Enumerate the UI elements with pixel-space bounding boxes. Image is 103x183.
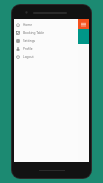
- button[interactable]: Home: [14, 21, 78, 29]
- button[interactable]: Open navigation drawer: [80, 21, 86, 27]
- button[interactable]: Booking Table: [14, 29, 78, 37]
- button[interactable]: Settings: [14, 37, 78, 45]
- staticText: Profile: [23, 47, 33, 51]
- button[interactable]: Logout: [14, 53, 78, 61]
- staticText: Home: [23, 23, 33, 27]
- staticText: Booking Table: [23, 31, 45, 35]
- staticText: Settings: [23, 39, 36, 43]
- staticText: Logout: [23, 55, 34, 59]
- button[interactable]: Profile: [14, 45, 78, 53]
